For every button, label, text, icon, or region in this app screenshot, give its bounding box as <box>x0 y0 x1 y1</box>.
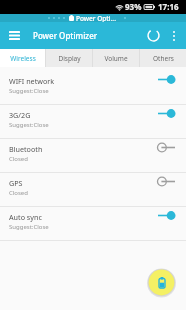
button[interactable]: GPS <box>0 173 186 206</box>
staticText: Power Optimizer <box>33 30 98 41</box>
staticText: Wireless <box>10 54 36 63</box>
staticText: 3G/2G <box>9 110 31 120</box>
button[interactable]: 3G/2G <box>0 105 186 138</box>
staticText: WIFI network <box>9 76 55 86</box>
staticText: Closed <box>9 189 28 197</box>
staticText: Power Opti... <box>76 14 116 22</box>
button[interactable]: More options <box>165 22 183 49</box>
button[interactable]: Others <box>140 49 186 67</box>
staticText: 93% <box>125 1 142 12</box>
staticText: Suggest:Close <box>9 121 49 129</box>
button[interactable]: Wireless <box>0 49 45 67</box>
button[interactable]: Refresh <box>141 22 165 49</box>
button[interactable]: WIFI network <box>0 71 186 104</box>
staticText: Suggest:Close <box>9 223 49 231</box>
button[interactable]: Navigation menu <box>4 22 25 49</box>
staticText: 17:16 <box>158 1 179 12</box>
staticText: Display <box>58 54 81 63</box>
staticText: GPS <box>9 178 23 188</box>
button[interactable]: Bluetooth <box>0 139 186 172</box>
staticText: Others <box>153 54 174 63</box>
staticText: Volume <box>104 54 128 63</box>
button[interactable]: Display <box>46 49 92 67</box>
button[interactable]: Optimize battery <box>147 268 176 297</box>
button[interactable]: Volume <box>93 49 139 67</box>
staticText: Closed <box>9 155 28 163</box>
staticText: Suggest:Close <box>9 87 49 95</box>
button[interactable]: Auto sync <box>0 207 186 240</box>
staticText: Bluetooth <box>9 144 43 154</box>
staticText: Auto sync <box>9 212 42 222</box>
